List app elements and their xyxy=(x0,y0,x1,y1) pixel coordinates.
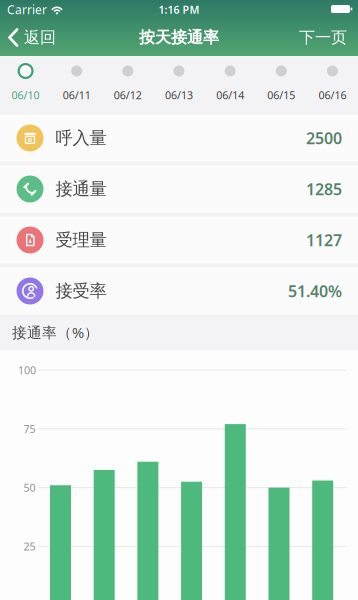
staticText: 受理量 xyxy=(55,229,106,251)
staticText: 返回 xyxy=(24,28,56,47)
staticText: 06/10 xyxy=(12,88,40,102)
button[interactable]: 06/12 xyxy=(102,56,153,112)
staticText: 06/14 xyxy=(216,88,244,102)
staticText: 06/11 xyxy=(63,88,91,102)
staticText: 06/12 xyxy=(114,88,142,102)
staticText: 接受率 xyxy=(55,280,106,302)
button[interactable]: 接通量 xyxy=(0,165,358,212)
staticText: 06/16 xyxy=(318,88,346,102)
button[interactable]: 受理量 xyxy=(0,216,358,263)
staticText: 75 xyxy=(23,422,35,436)
button[interactable]: 06/16 xyxy=(307,56,358,112)
staticText: 接通率（%） xyxy=(12,322,99,342)
staticText: 50 xyxy=(23,480,35,495)
staticText: 2500 xyxy=(306,127,342,149)
button[interactable]: 06/14 xyxy=(205,56,256,112)
staticText: 06/15 xyxy=(267,88,295,102)
button[interactable]: 接受率 xyxy=(0,267,358,314)
staticText: Carrier xyxy=(7,1,47,17)
staticText: 1127 xyxy=(306,229,342,251)
button[interactable]: 06/10 xyxy=(0,56,51,112)
button[interactable]: 06/15 xyxy=(256,56,307,112)
staticText: 呼入量 xyxy=(55,127,106,149)
staticText: 25 xyxy=(23,539,35,553)
staticText: 100 xyxy=(18,363,36,377)
button[interactable]: 返回 xyxy=(0,16,56,58)
staticText: 51.40% xyxy=(288,280,342,302)
staticText: 06/13 xyxy=(165,88,193,102)
staticText: 按天接通率 xyxy=(139,28,219,47)
button[interactable]: 下一页 xyxy=(299,16,358,58)
staticText: 下一页 xyxy=(299,28,347,47)
button[interactable]: 06/13 xyxy=(153,56,204,112)
staticText: 1285 xyxy=(306,178,342,200)
button[interactable]: 06/11 xyxy=(51,56,102,112)
staticText: 1:16 PM xyxy=(158,2,199,17)
staticText: 接通量 xyxy=(55,178,106,200)
button[interactable]: 呼入量 xyxy=(0,114,358,161)
